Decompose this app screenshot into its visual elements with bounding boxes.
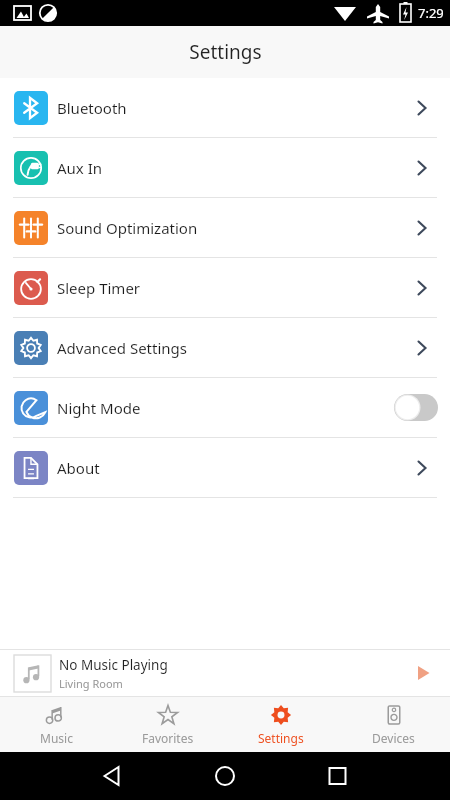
button[interactable]: Aux In [0, 138, 450, 197]
button[interactable]: Sound Optimization [0, 198, 450, 257]
staticText: Sound Optimization [57, 218, 408, 238]
other: Open Sleep Timer [408, 273, 438, 303]
button[interactable]: No Music Playing [0, 650, 450, 696]
other: Open Aux In [408, 153, 438, 183]
other: Open Bluetooth [408, 93, 438, 123]
button[interactable]: Advanced Settings [0, 318, 450, 377]
button[interactable]: Favorites [112, 697, 224, 752]
other: Open Sound Optimization [408, 213, 438, 243]
staticText: About [57, 458, 408, 478]
button[interactable]: About [0, 438, 450, 497]
staticText: Settings [258, 730, 304, 746]
staticText: No Music Playing [59, 656, 168, 674]
button[interactable]: Play [408, 658, 438, 688]
staticText: Aux In [57, 158, 408, 178]
staticText: Devices [372, 730, 415, 746]
other: Open About [408, 453, 438, 483]
button[interactable]: Night Mode toggle [394, 394, 438, 421]
button[interactable]: Night Mode [0, 378, 450, 437]
staticText: Settings [189, 39, 262, 65]
button[interactable]: Devices [337, 697, 450, 752]
staticText: 7:29 [418, 4, 444, 22]
button[interactable]: Music [0, 697, 112, 752]
staticText: Living Room [59, 676, 123, 691]
other: Open Advanced Settings [408, 333, 438, 363]
button[interactable]: Bluetooth [0, 78, 450, 137]
staticText: Sleep Timer [57, 278, 408, 298]
staticText: Bluetooth [57, 98, 408, 118]
staticText: Night Mode [57, 398, 394, 418]
staticText: Favorites [142, 730, 194, 746]
staticText: Music [40, 730, 73, 746]
button[interactable]: Sleep Timer [0, 258, 450, 317]
staticText: Advanced Settings [57, 338, 408, 358]
button[interactable]: Settings [224, 697, 337, 752]
